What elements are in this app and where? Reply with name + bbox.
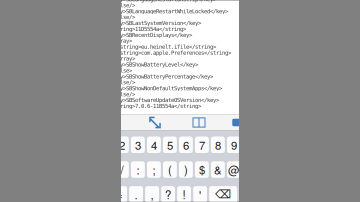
staticText: 7: [199, 137, 205, 153]
button[interactable]: (: [163, 161, 177, 178]
staticText: 2: [119, 137, 125, 153]
staticText: ): [184, 161, 188, 178]
staticText: #+=: [103, 186, 123, 202]
staticText: !: [183, 186, 186, 202]
staticText: <key>SBShowNonDefaultSystemApps</key>: [111, 85, 222, 92]
staticText: 8: [215, 137, 221, 153]
staticText: <key>SBLanguageRestartWhileLocked</key>: [111, 8, 228, 14]
staticText: &: [214, 161, 222, 178]
staticText: /: [120, 161, 123, 178]
staticText: 6: [183, 137, 189, 153]
button[interactable]: Documents: [228, 114, 244, 130]
staticText: <false>: [111, 67, 132, 74]
staticText: ⌫: [215, 188, 231, 201]
staticText: ;: [152, 161, 155, 178]
staticText: 9: [231, 137, 237, 153]
button[interactable]: ': [193, 186, 207, 202]
button[interactable]: 2: [115, 136, 129, 153]
staticText: <key>SBShowBatteryLevel</key>: [111, 61, 198, 68]
button[interactable]: ;: [147, 161, 161, 178]
staticText: <false/>: [111, 91, 135, 97]
staticText: <key>SBRecentDisplays</key>: [111, 32, 192, 38]
staticText: ': [199, 186, 201, 202]
staticText: <array>: [111, 38, 132, 44]
staticText: :: [136, 161, 139, 178]
staticText: <false/>: [111, 79, 135, 86]
button[interactable]: 6: [179, 136, 193, 153]
button[interactable]: $: [195, 161, 209, 178]
button[interactable]: .: [129, 186, 143, 202]
button[interactable]: 8: [211, 136, 225, 153]
button[interactable]: ?: [161, 186, 175, 202]
staticText: <key>SBShowBatteryPercentage</key>: [111, 73, 213, 80]
staticText: <string>eu.heinelt.ifile</string>: [111, 43, 216, 50]
button[interactable]: 3: [131, 136, 145, 153]
staticText: 5: [167, 137, 173, 153]
button[interactable]: 4: [147, 136, 161, 153]
staticText: <key>SBLastSystemVersion</key>: [111, 20, 201, 26]
button[interactable]: ,: [145, 186, 159, 202]
staticText: .: [135, 186, 138, 202]
staticText: ,: [151, 186, 154, 202]
button[interactable]: !: [177, 186, 191, 202]
button[interactable]: 5: [163, 136, 177, 153]
button[interactable]: ⌫: [209, 186, 237, 202]
button[interactable]: @: [227, 161, 241, 178]
staticText: 4: [151, 137, 157, 153]
staticText: ?: [165, 186, 171, 202]
button[interactable]: Pages: [188, 114, 210, 130]
staticText: <key>SBSoftwareUpdateOSVersion</key>: [111, 97, 219, 103]
staticText: </array>: [111, 55, 135, 62]
staticText: @: [228, 161, 240, 178]
button[interactable]: :: [131, 161, 145, 178]
button[interactable]: ): [179, 161, 193, 178]
button[interactable]: 9: [227, 136, 241, 153]
button[interactable]: &: [211, 161, 225, 178]
staticText: <false/>: [111, 14, 135, 20]
button[interactable]: 7: [195, 136, 209, 153]
button[interactable]: #+=: [99, 186, 127, 202]
button[interactable]: Resize editor: [144, 114, 166, 130]
staticText: $: [199, 161, 205, 178]
staticText: <string>7.0.6-11B554a</string>: [111, 103, 201, 109]
staticText: <string>11D5554a</string>: [111, 26, 186, 32]
button[interactable]: /: [115, 161, 129, 178]
staticText: 3: [135, 137, 141, 153]
staticText: <false/>: [111, 2, 135, 8]
staticText: <key>SBLanguageRestartOnStrip</key>: [111, 0, 216, 3]
staticText: <string>com.apple.Preferences</string>: [111, 49, 231, 56]
staticText: (: [168, 161, 172, 178]
